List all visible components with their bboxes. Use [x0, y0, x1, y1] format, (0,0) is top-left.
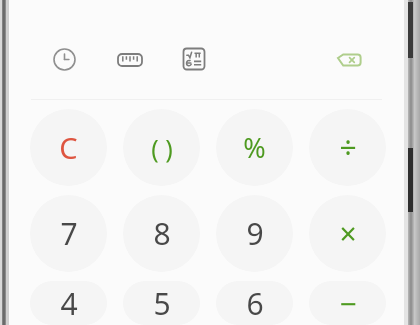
button[interactable]: History	[46, 41, 82, 77]
staticText: ×	[339, 213, 357, 254]
button[interactable]: 5	[123, 281, 200, 325]
button[interactable]: ÷	[309, 109, 386, 186]
staticText: 8	[153, 213, 171, 254]
staticText: %	[243, 129, 266, 166]
button[interactable]: 8	[123, 195, 200, 272]
staticText: 7	[60, 213, 78, 254]
staticText: 6	[246, 283, 264, 324]
button[interactable]: ( )	[123, 109, 200, 186]
staticText: C	[59, 128, 78, 167]
staticText: ( )	[151, 131, 173, 165]
button[interactable]: −	[309, 281, 386, 325]
button[interactable]: Backspace	[329, 41, 367, 79]
staticText: 5	[153, 283, 171, 324]
button[interactable]: 9	[216, 195, 293, 272]
button[interactable]: 6	[216, 281, 293, 325]
staticText: −	[339, 283, 357, 324]
staticText: 9	[246, 213, 264, 254]
staticText: ÷	[339, 127, 357, 168]
button[interactable]: %	[216, 109, 293, 186]
staticText: 4	[60, 283, 78, 324]
button[interactable]: 7	[30, 195, 107, 272]
button[interactable]: Unit converter	[112, 41, 148, 77]
button[interactable]: Scientific calculator	[176, 41, 212, 77]
button[interactable]: 4	[30, 281, 107, 325]
button[interactable]: C	[30, 109, 107, 186]
button[interactable]: ×	[309, 195, 386, 272]
